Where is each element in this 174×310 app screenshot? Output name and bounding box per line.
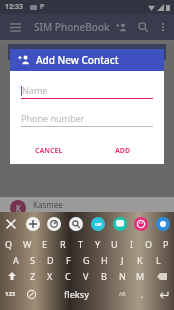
staticText: W (23, 238, 32, 250)
button[interactable]: . (132, 284, 152, 304)
button[interactable]: Backspace (149, 268, 174, 284)
button[interactable]: N (113, 268, 131, 284)
staticText: CANCEL (35, 146, 63, 156)
staticText: Z (30, 270, 36, 282)
staticText: F (66, 254, 71, 266)
staticText: IND. TELKOMSEL (20, 47, 78, 57)
button[interactable]: A (7, 252, 24, 268)
button[interactable]: U (106, 236, 123, 252)
button[interactable]: Search (132, 16, 154, 38)
button[interactable]: K (10, 197, 164, 219)
staticText: J (121, 254, 124, 266)
button[interactable]: Close toolbar (4, 217, 18, 231)
button[interactable]: B (95, 268, 113, 284)
button[interactable]: Space (41, 284, 112, 304)
staticText: GIF (95, 222, 102, 227)
button[interactable]: Numbers and symbols (0, 284, 21, 304)
button[interactable]: M (131, 268, 149, 284)
button[interactable]: D (41, 252, 59, 268)
button[interactable]: O (140, 236, 157, 252)
button[interactable]: Add (26, 217, 40, 231)
button[interactable]: Language (112, 284, 132, 304)
staticText: P (163, 238, 169, 250)
button[interactable]: More options (154, 18, 172, 36)
button[interactable]: Open navigation menu (4, 16, 26, 38)
staticText: L (156, 254, 161, 266)
button[interactable]: C (59, 268, 77, 284)
staticText: 12:33 (5, 2, 23, 12)
staticText: Add New Contact (36, 53, 119, 67)
staticText: K (137, 254, 143, 266)
button[interactable]: Name (21, 84, 153, 99)
button[interactable]: K (131, 252, 149, 268)
button[interactable]: W (18, 236, 36, 252)
staticText: Kasmee (33, 199, 63, 210)
button[interactable]: Emoji (134, 217, 148, 231)
staticText: D (47, 254, 54, 266)
staticText: fleksy (64, 288, 89, 300)
button[interactable]: Search (69, 217, 83, 231)
button[interactable]: X (41, 268, 59, 284)
staticText: SIM PhoneBook (34, 20, 110, 34)
button[interactable]: Enter (152, 284, 174, 304)
staticText: . (141, 288, 144, 300)
button[interactable]: Shift (0, 268, 24, 284)
staticText: B (101, 270, 107, 282)
button[interactable]: L (149, 252, 167, 268)
staticText: Q (5, 238, 13, 250)
staticText: 123 (5, 290, 16, 298)
staticText: Y (95, 238, 101, 250)
button[interactable]: Phone number (21, 112, 153, 127)
button[interactable]: Themes (156, 217, 170, 231)
staticText: +66000000000 (33, 210, 75, 218)
staticText: AB (119, 291, 126, 298)
button[interactable]: Fleksy menu (21, 284, 41, 304)
button[interactable]: S (24, 252, 41, 268)
staticText: Lion (33, 225, 50, 236)
button[interactable]: J (113, 252, 131, 268)
button[interactable]: R (54, 236, 72, 252)
staticText: E (42, 238, 48, 250)
button[interactable]: G (77, 252, 95, 268)
button[interactable]: Stickers (113, 217, 127, 231)
staticText: S (30, 254, 35, 266)
button[interactable]: Y (89, 236, 106, 252)
button[interactable]: V (77, 268, 95, 284)
staticText: Name (22, 84, 48, 96)
button[interactable]: P (157, 236, 174, 252)
staticText: T (78, 238, 84, 250)
staticText: G (83, 254, 90, 266)
staticText: ADD (115, 146, 131, 156)
button[interactable]: Q (0, 236, 18, 252)
button[interactable]: L (10, 219, 164, 241)
staticText: N (119, 270, 126, 282)
staticText: R (60, 238, 66, 250)
staticText: M (136, 270, 145, 282)
staticText: K (16, 203, 21, 214)
button[interactable]: E (36, 236, 54, 252)
button[interactable]: Add contact (110, 16, 132, 38)
button[interactable]: F (59, 252, 77, 268)
staticText: I (130, 238, 134, 250)
staticText: X (47, 270, 53, 282)
button[interactable]: H (95, 252, 113, 268)
button[interactable]: I (123, 236, 140, 252)
staticText: U (111, 238, 118, 250)
staticText: V (83, 270, 89, 282)
button[interactable]: T (72, 236, 89, 252)
staticText: C (65, 270, 71, 282)
staticText: P (40, 2, 45, 12)
staticText: O (145, 238, 153, 250)
button[interactable]: CANCEL (32, 143, 66, 159)
staticText: H (101, 254, 108, 266)
staticText: Phone number (21, 112, 85, 124)
staticText: A (13, 254, 19, 266)
button[interactable]: ADD (112, 143, 134, 159)
button[interactable]: GIF (91, 217, 105, 231)
button[interactable]: Z (24, 268, 41, 284)
button[interactable]: Settings (47, 217, 61, 231)
